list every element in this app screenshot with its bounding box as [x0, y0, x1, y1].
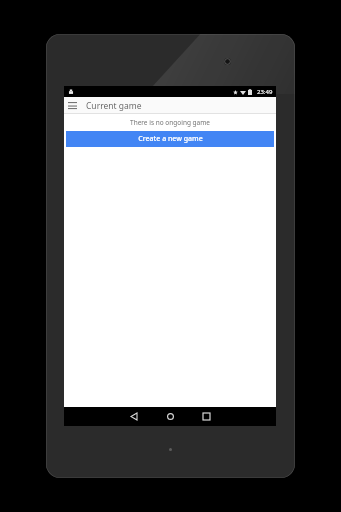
staticText: Create a new game — [138, 134, 203, 144]
button[interactable]: Back — [116, 407, 152, 426]
button[interactable]: Recent apps — [188, 407, 224, 426]
button[interactable]: Home — [152, 407, 188, 426]
staticText: 23:49 — [257, 88, 273, 96]
button[interactable]: Create a new game — [66, 131, 274, 147]
button[interactable]: Open navigation drawer — [64, 97, 81, 114]
staticText: There is no ongoing game — [130, 118, 210, 127]
staticText: Current game — [86, 100, 142, 112]
